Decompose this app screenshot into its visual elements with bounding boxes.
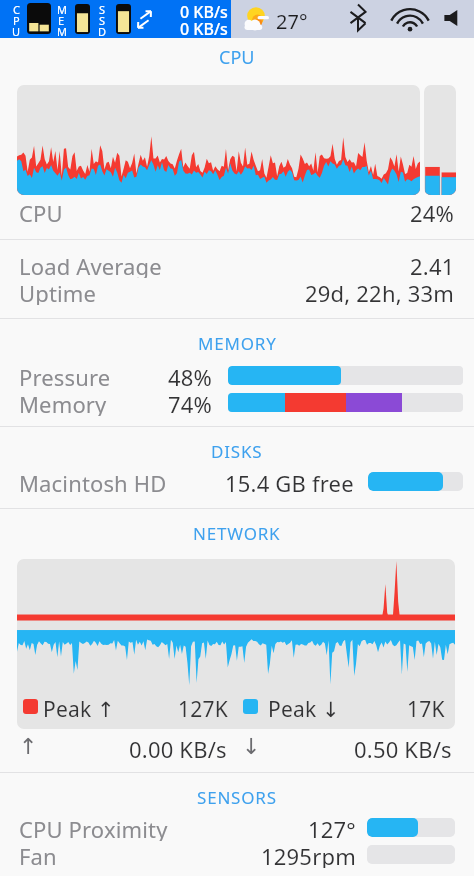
staticText: 74%	[168, 389, 213, 416]
staticText: Memory	[19, 389, 107, 416]
staticText: M	[57, 2, 67, 17]
button[interactable]: Macintosh HD	[19, 468, 463, 495]
staticText: Uptime	[19, 278, 97, 305]
staticText: 48%	[168, 362, 213, 389]
staticText: DISKS	[211, 440, 263, 463]
staticText: 1295rpm	[261, 841, 356, 868]
other: Weather	[243, 6, 269, 31]
staticText: 0 KB/s	[180, 1, 228, 23]
staticText: CPU	[219, 45, 255, 70]
staticText: 127°	[308, 814, 356, 841]
staticText: ↓	[242, 734, 261, 760]
other: Bluetooth	[350, 4, 366, 31]
staticText: S	[99, 13, 106, 28]
staticText: 0.50 KB/s	[354, 734, 452, 764]
staticText: 24%	[410, 198, 455, 228]
staticText: Peak ↓	[268, 695, 340, 724]
staticText: 17K	[407, 695, 445, 724]
staticText: Fan	[19, 841, 57, 868]
staticText: Peak ↑	[43, 695, 115, 724]
staticText: 29d, 22h, 33m	[305, 278, 455, 305]
staticText: D	[98, 24, 107, 39]
staticText: P	[13, 13, 20, 28]
staticText: SENSORS	[197, 786, 277, 809]
staticText: 2.41	[410, 251, 455, 278]
staticText: Macintosh HD	[19, 468, 167, 495]
button[interactable]: Fan	[19, 841, 455, 868]
staticText: C	[13, 2, 20, 17]
staticText: 15.4 GB free	[225, 468, 354, 495]
staticText: CPU	[19, 198, 63, 228]
staticText: ↑	[19, 734, 38, 760]
button[interactable]: ↑	[0, 729, 474, 763]
button[interactable]: CPU	[19, 197, 455, 229]
button[interactable]: Uptime	[19, 278, 455, 305]
button[interactable]: Memory	[19, 389, 463, 416]
staticText: 0 KB/s	[180, 18, 228, 40]
other: Wi-Fi	[389, 6, 431, 32]
staticText: NETWORK	[193, 522, 281, 545]
staticText: Load Average	[19, 251, 162, 278]
staticText: S	[99, 2, 106, 17]
button[interactable]: CPU Proximity	[19, 814, 455, 841]
staticText: 0.00 KB/s	[129, 734, 227, 764]
staticText: Pressure	[19, 362, 111, 389]
staticText: M	[57, 24, 67, 39]
staticText: CPU Proximity	[19, 814, 168, 841]
staticText: 27°	[276, 8, 308, 35]
staticText: U	[12, 24, 21, 39]
staticText: E	[58, 13, 65, 28]
staticText: MEMORY	[198, 332, 277, 355]
other: Network activity	[136, 10, 153, 29]
staticText: 127K	[178, 695, 228, 724]
button[interactable]: Pressure	[19, 362, 463, 389]
other: Volume	[444, 9, 463, 27]
button[interactable]: Load Average	[19, 251, 455, 278]
